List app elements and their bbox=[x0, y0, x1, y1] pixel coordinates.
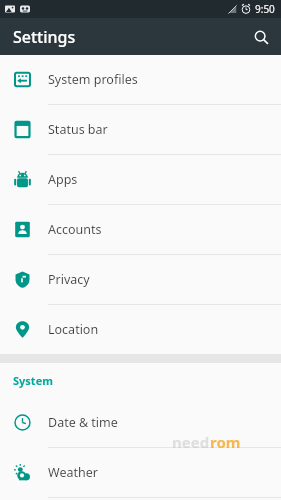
staticText: Accounts bbox=[48, 221, 102, 238]
staticText: Privacy bbox=[48, 271, 90, 288]
staticText: Date & time bbox=[48, 414, 118, 431]
staticText: System bbox=[13, 373, 53, 388]
button[interactable]: Status bar bbox=[0, 105, 281, 155]
staticText: Location bbox=[48, 321, 99, 338]
staticText: Apps bbox=[48, 171, 78, 188]
button[interactable]: Apps bbox=[0, 155, 281, 205]
button[interactable]: Privacy bbox=[0, 255, 281, 305]
button[interactable]: Date & time bbox=[0, 398, 281, 448]
staticText: Weather bbox=[48, 464, 98, 481]
staticText: rom bbox=[210, 432, 241, 452]
button[interactable]: Accounts bbox=[0, 205, 281, 255]
staticText: need bbox=[172, 432, 210, 452]
staticText: Status bar bbox=[48, 121, 108, 138]
staticText: Settings bbox=[13, 26, 76, 48]
button[interactable]: Search bbox=[246, 22, 276, 52]
staticText: System profiles bbox=[48, 71, 138, 88]
button[interactable]: System profiles bbox=[0, 55, 281, 105]
staticText: 9:50 bbox=[255, 2, 275, 16]
button[interactable]: Weather bbox=[0, 448, 281, 498]
button[interactable]: Location bbox=[0, 305, 281, 354]
